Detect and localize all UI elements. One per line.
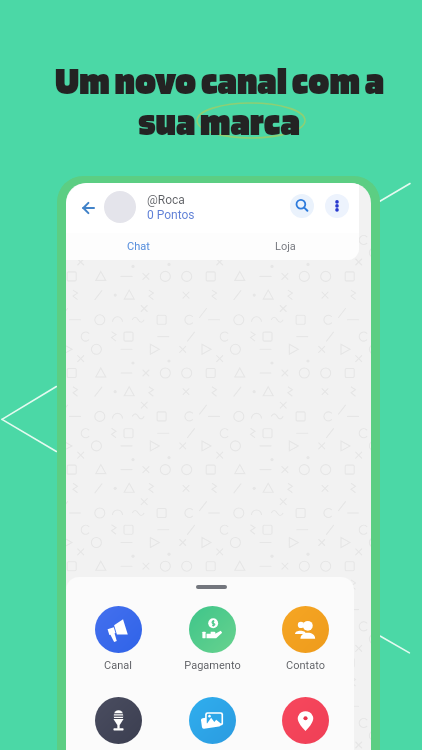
button[interactable]: Pagamento [167,606,257,672]
staticText: Contato [286,659,325,672]
staticText: 0 Pontos [147,208,195,222]
button[interactable]: Chat [113,233,163,260]
staticText: Pagamento [184,659,241,672]
staticText: Loja [275,240,296,253]
button[interactable]: Imagem [167,697,257,750]
staticText: sua marca [138,98,300,145]
staticText: Um novo canal com a [55,57,384,104]
button[interactable]: More options [325,194,349,218]
button[interactable]: Canal [73,606,163,672]
staticText: Chat [127,240,150,253]
button[interactable]: Áudio [73,697,163,750]
staticText: @Roca [147,193,185,207]
button[interactable]: Contato [260,606,350,672]
button[interactable]: Back [76,196,100,220]
staticText: Canal [104,659,132,672]
button[interactable]: Search [290,194,314,218]
button[interactable]: Local [260,697,350,750]
button[interactable]: Loja [260,233,310,260]
